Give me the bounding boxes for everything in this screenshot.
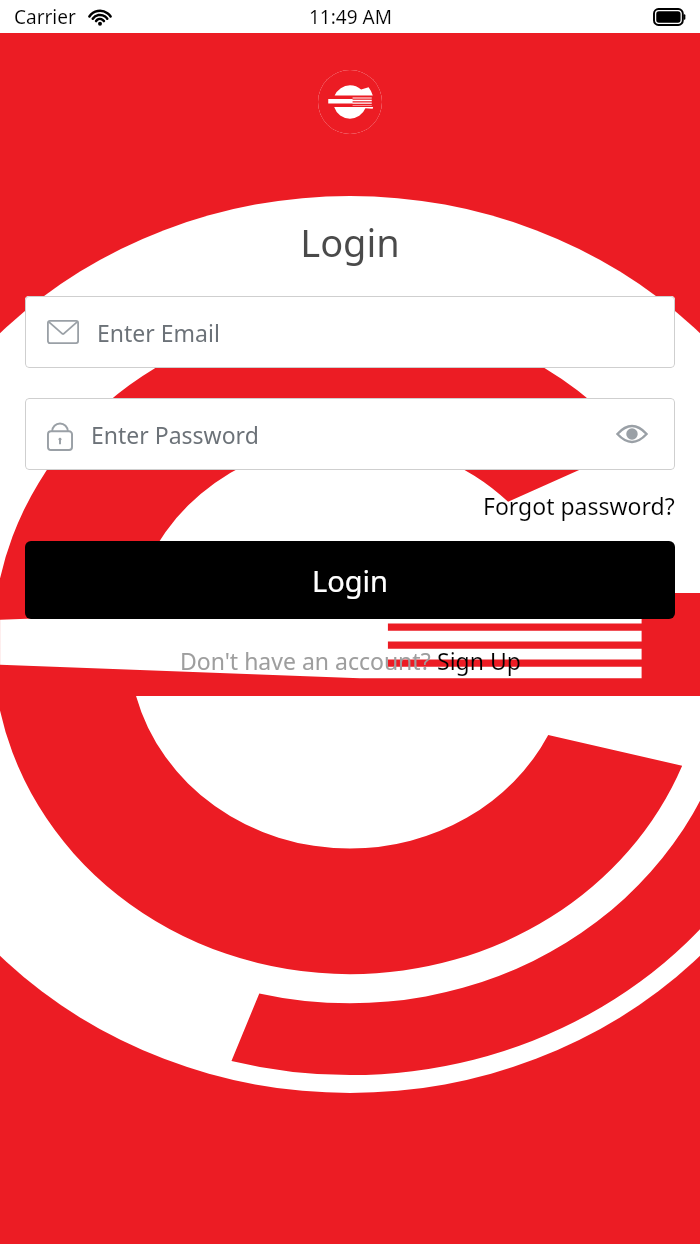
button[interactable]: Sign Up [437, 645, 521, 676]
button[interactable]: Show password [611, 413, 653, 455]
other: App logo [318, 70, 382, 134]
staticText: Sign Up [437, 645, 521, 676]
button[interactable]: Login [25, 541, 675, 619]
staticText: Login [312, 561, 388, 600]
staticText: Login [0, 216, 700, 268]
staticText: Don't have an account? [180, 645, 431, 676]
staticText: 11:49 AM [309, 4, 392, 30]
button[interactable]: Enter Email [25, 296, 675, 368]
button[interactable]: Forgot password? [483, 486, 675, 525]
staticText: Forgot password? [483, 490, 675, 521]
staticText: Carrier [14, 4, 76, 30]
button[interactable]: Enter Password [25, 398, 675, 470]
staticText: Enter Password [91, 419, 611, 450]
staticText: Enter Email [97, 317, 653, 348]
